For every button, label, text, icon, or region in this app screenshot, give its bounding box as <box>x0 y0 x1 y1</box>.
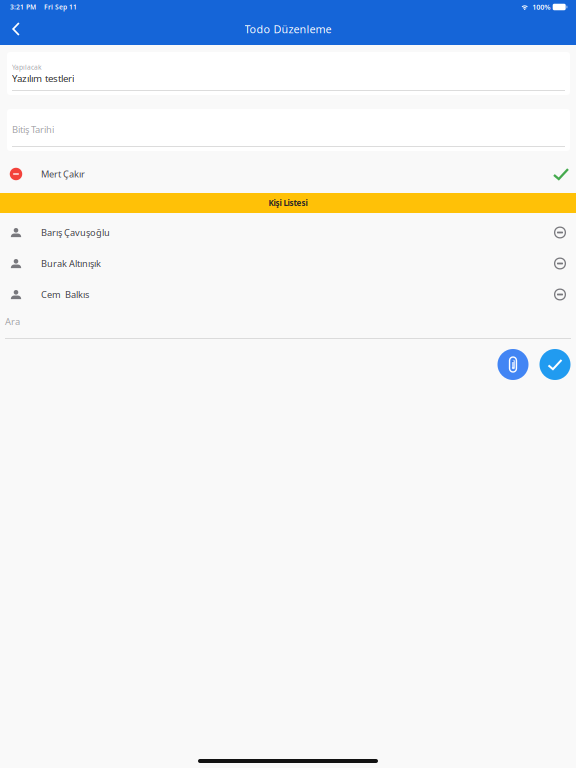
button[interactable]: Burak Altınışık <box>0 248 576 279</box>
button[interactable]: Back <box>3 16 29 42</box>
staticText: Yapılacak <box>12 62 42 72</box>
staticText: Todo Düzenleme <box>244 22 331 36</box>
button[interactable]: Confirm <box>551 164 571 184</box>
staticText: 100% <box>532 2 550 12</box>
staticText: Kişi Listesi <box>268 198 307 208</box>
button[interactable]: Save <box>528 349 570 380</box>
staticText: 3:21 PM <box>10 2 36 12</box>
staticText: Cem Balkıs <box>41 288 89 301</box>
staticText: Yazılım testleri <box>12 72 74 85</box>
staticText: Mert Çakır <box>41 168 85 180</box>
button[interactable]: Remove Mert Çakır <box>5 163 27 185</box>
button[interactable]: Attach file <box>497 349 528 380</box>
button[interactable]: Cem Balkıs <box>0 279 576 310</box>
staticText: Fri Sep 11 <box>44 2 77 12</box>
button[interactable]: Barış Çavuşoğlu <box>0 217 576 248</box>
staticText: Burak Altınışık <box>41 257 101 270</box>
staticText: Barış Çavuşoğlu <box>41 226 110 239</box>
staticText: Bitiş Tarihi <box>12 123 54 136</box>
staticText: Ara <box>5 315 20 328</box>
